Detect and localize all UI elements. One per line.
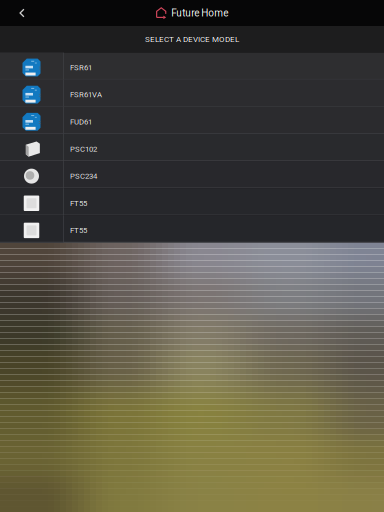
staticText: FT55: [70, 199, 87, 208]
button[interactable]: Back: [0, 0, 44, 26]
staticText: FSR61: [70, 63, 92, 72]
staticText: PSC102: [70, 144, 97, 154]
button[interactable]: FUD61: [0, 107, 384, 134]
button[interactable]: PSC102: [0, 134, 384, 161]
staticText: PSC234: [70, 172, 97, 181]
button[interactable]: FSR61: [0, 52, 384, 80]
staticText: SELECT A DEVICE MODEL: [145, 35, 239, 44]
staticText: Future Home: [171, 7, 228, 19]
staticText: FSR61VA: [70, 90, 102, 99]
button[interactable]: FT55: [0, 215, 384, 242]
staticText: FUD61: [70, 117, 92, 126]
button[interactable]: FSR61VA: [0, 80, 384, 107]
button[interactable]: PSC234: [0, 161, 384, 188]
button[interactable]: FT55: [0, 188, 384, 215]
staticText: FT55: [70, 226, 87, 235]
